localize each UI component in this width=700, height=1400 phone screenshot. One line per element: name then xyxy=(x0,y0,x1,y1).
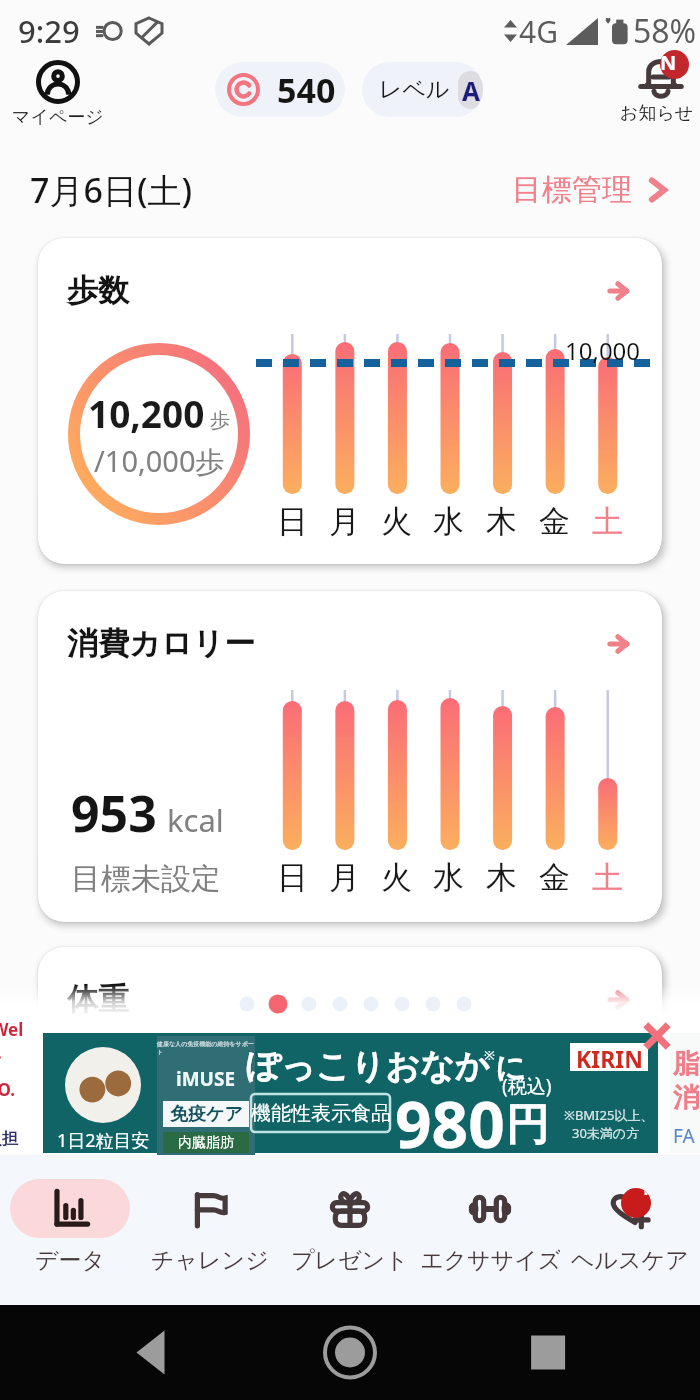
staticText: 日 xyxy=(277,502,308,541)
staticText: 水 xyxy=(433,858,464,897)
button[interactable]: 540 xyxy=(227,62,345,117)
other: 体重の詳細 xyxy=(605,989,627,1011)
staticText: 歩 xyxy=(210,408,230,433)
button[interactable]: エクササイズ xyxy=(420,1182,560,1278)
staticText: 水 xyxy=(433,502,464,541)
button[interactable]: マイページ xyxy=(12,60,104,129)
staticText: (税込) xyxy=(502,1073,552,1099)
staticText: N xyxy=(660,50,677,76)
staticText: 脂 xyxy=(673,1047,700,1081)
staticText: FA xyxy=(673,1123,695,1149)
staticText: 9:29 xyxy=(18,10,80,52)
staticText: 体重 xyxy=(67,980,129,1019)
button[interactable]: 体重 xyxy=(38,947,662,1147)
staticText: 消 xyxy=(673,1081,700,1115)
staticText: iMUSE xyxy=(176,1066,236,1092)
staticText: 健康な人の免疫機能の維持をサポート xyxy=(157,1040,255,1056)
button[interactable]: 目標管理 xyxy=(512,171,672,209)
staticText: /10,000歩 xyxy=(94,441,225,481)
staticText: 1日2粒目安 xyxy=(57,1128,150,1153)
staticText: プレゼント xyxy=(291,1246,409,1275)
staticText: ※ xyxy=(484,1046,495,1064)
staticText: Well. xyxy=(0,1018,28,1064)
staticText: 金 xyxy=(539,502,570,541)
staticText: 土 xyxy=(592,502,623,541)
button[interactable]: チャレンジ xyxy=(140,1182,280,1278)
staticText: 4G xyxy=(519,11,558,52)
staticText: 土 xyxy=(592,858,623,897)
staticText: 円 xyxy=(506,1098,549,1152)
other: 歩数の詳細 xyxy=(605,280,627,302)
staticText: 目標管理 xyxy=(512,171,632,209)
staticText: レベル xyxy=(379,75,450,104)
staticText: 内臓脂肪 xyxy=(178,1134,234,1152)
staticText: ※BMI25以上、 xyxy=(564,1106,654,1124)
staticText: に xyxy=(495,1049,526,1087)
staticText: 953 xyxy=(71,779,157,847)
button[interactable]: データ xyxy=(0,1182,140,1278)
staticText: 月 xyxy=(329,502,360,541)
staticText: エクササイズ xyxy=(420,1246,560,1275)
staticText: kcal xyxy=(167,799,224,841)
staticText: 免疫ケア xyxy=(170,1103,243,1126)
staticText: お知らせ xyxy=(620,102,694,125)
button[interactable]: お知らせ xyxy=(620,50,694,125)
button[interactable]: 消費カロリー xyxy=(38,591,662,922)
staticText: TO. xyxy=(0,1078,16,1101)
staticText: 木 xyxy=(486,858,517,897)
button[interactable]: 閉じる xyxy=(641,1020,673,1052)
staticText: 消費カロリー xyxy=(67,624,256,663)
staticText: マイページ xyxy=(12,106,104,129)
staticText: 金 xyxy=(539,858,570,897)
staticText: 火 xyxy=(381,858,412,897)
button[interactable]: N xyxy=(560,1182,700,1278)
button[interactable]: プレゼント xyxy=(280,1182,420,1278)
staticText: A xyxy=(462,73,480,108)
staticText: 火 xyxy=(381,502,412,541)
staticText: 10,200 xyxy=(88,388,205,438)
staticText: 10,000 xyxy=(565,334,641,367)
staticText: KIRIN xyxy=(576,1043,643,1071)
staticText: 980 xyxy=(395,1080,505,1167)
staticText: チャレンジ xyxy=(151,1246,269,1275)
staticText: 機能性表示食品 xyxy=(251,1101,390,1126)
staticText: 58% xyxy=(633,9,697,53)
staticText: 540 xyxy=(277,67,336,113)
staticText: データ xyxy=(35,1246,106,1275)
staticText: 木 xyxy=(486,502,517,541)
staticText: 30未満の方 xyxy=(572,1124,640,1142)
button[interactable]: レベル xyxy=(379,62,483,117)
other: 消費カロリーの詳細 xyxy=(605,633,627,655)
staticText: N xyxy=(643,1188,651,1201)
button[interactable]: 1日2粒目安 xyxy=(43,1033,658,1153)
staticText: 月 xyxy=(329,858,360,897)
staticText: 負担 xyxy=(0,1129,18,1149)
staticText: ぽっこりおなか xyxy=(246,1045,490,1088)
staticText: 目標未設定 xyxy=(71,860,221,898)
staticText: 7月6日(土) xyxy=(30,167,193,213)
button[interactable]: 歩数 xyxy=(38,238,662,564)
staticText: 歩数 xyxy=(67,271,129,310)
staticText: ヘルスケア xyxy=(571,1246,689,1275)
staticText: 日 xyxy=(277,858,308,897)
